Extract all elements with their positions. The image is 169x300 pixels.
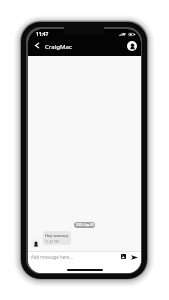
button[interactable]: Attach image [120,253,127,260]
staticText: CraigMac [45,42,72,50]
staticText: 11:47 PM [45,240,59,244]
staticText: 2023-Sep-05 [76,223,94,227]
button[interactable]: Profile [127,41,137,51]
staticText: Add message here... [31,254,73,260]
button[interactable]: Send [130,253,138,261]
button[interactable]: Add message here... [31,254,120,260]
staticText: 11:47 [36,31,49,38]
staticText: Hey wassup. [45,233,69,239]
button[interactable]: Back [32,41,41,50]
